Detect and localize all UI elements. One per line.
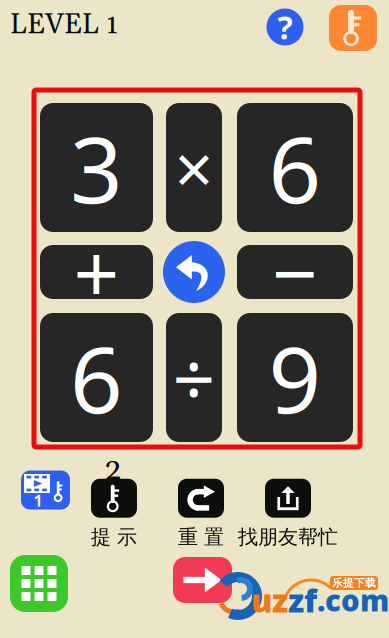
button[interactable]: 提 示 (91, 479, 137, 549)
staticText: 6 (70, 316, 123, 439)
staticText: ÷ (172, 328, 215, 427)
button[interactable]: 3 (40, 103, 153, 232)
staticText: LEVEL 1 (10, 7, 118, 43)
staticText: 找朋友帮忙 (238, 525, 338, 549)
button[interactable]: + (40, 245, 153, 299)
staticText: 9 (268, 316, 321, 439)
staticText: × (174, 122, 213, 213)
staticText: 重 置 (178, 525, 224, 549)
button[interactable]: × (166, 103, 222, 232)
staticText: − (272, 219, 318, 325)
staticText: uz (251, 579, 288, 621)
button[interactable]: Key (329, 5, 377, 51)
button[interactable]: Help (266, 8, 303, 45)
staticText: .com (317, 580, 389, 619)
button[interactable]: 6 (40, 313, 153, 442)
staticText: 乐提下载 (332, 576, 376, 589)
staticText: 3 (70, 106, 123, 229)
staticText: zf (288, 579, 317, 621)
button[interactable]: Next level (173, 557, 232, 603)
staticText: 6 (268, 106, 321, 229)
button[interactable]: 重 置 (178, 479, 224, 549)
staticText: 2 (104, 450, 121, 489)
button[interactable]: − (237, 245, 353, 299)
button[interactable]: 6 (237, 103, 353, 232)
staticText: + (73, 219, 119, 325)
button[interactable]: ÷ (166, 313, 222, 442)
button[interactable]: 找朋友帮忙 (238, 479, 338, 549)
button[interactable]: All levels (10, 555, 68, 612)
staticText: 提 示 (91, 525, 137, 549)
staticText: ? (277, 6, 292, 48)
button[interactable]: Watch ad for key (21, 470, 70, 509)
button[interactable]: Undo (163, 241, 225, 303)
staticText: 1 (33, 490, 42, 511)
button[interactable]: 9 (237, 313, 353, 442)
